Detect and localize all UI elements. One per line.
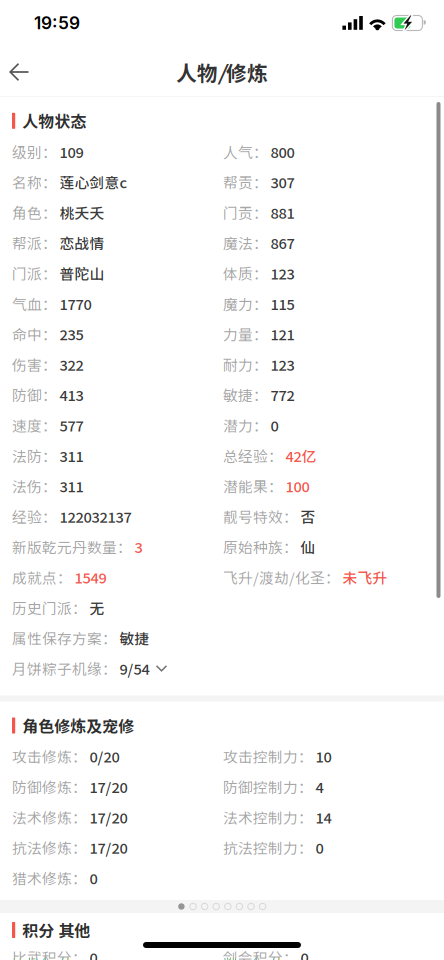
staticText: 3 [134,536,142,557]
staticText: 322 [59,354,83,375]
staticText: 积分 其他 [22,918,90,942]
staticText: 帮派： [12,232,57,253]
staticText: 577 [59,414,83,436]
staticText: 猎术修炼： [12,867,87,888]
staticText: 耐力： [223,354,268,375]
staticText: 仙 [300,536,315,557]
staticText: 311 [59,475,83,496]
staticText: 潜力： [223,414,268,436]
staticText: 人气： [223,141,268,162]
staticText: 攻击控制力： [223,746,313,767]
staticText: 311 [59,445,83,466]
staticText: 人物 [176,57,218,87]
staticText: 新版乾元丹数量： [12,536,132,557]
staticText: 剑会积分： [223,947,298,960]
staticText: 命中： [12,323,57,344]
staticText: 速度： [12,414,57,436]
button[interactable]: Back [0,48,54,96]
staticText: 体质： [223,262,268,284]
staticText: 普陀山 [59,262,104,284]
staticText: 123 [270,262,294,284]
staticText: 属性保存方案： [12,627,117,648]
staticText: 级别： [12,141,57,162]
staticText: 121 [270,323,294,344]
staticText: 42亿 [285,445,316,466]
staticText: 伤害： [12,354,57,375]
staticText: 772 [270,384,294,405]
staticText: 0 [270,414,278,436]
staticText: 413 [59,384,83,405]
staticText: 气血： [12,293,57,314]
staticText: 门贡： [223,202,268,223]
staticText: 角色： [12,202,57,223]
staticText: 敏捷： [223,384,268,405]
staticText: 1549 [74,566,106,588]
staticText: 235 [59,323,83,344]
staticText: 法防： [12,445,57,466]
staticText: 800 [270,141,294,162]
staticText: 修炼 [226,57,268,87]
staticText: 14 [315,806,331,828]
staticText: 敏捷 [119,627,149,648]
staticText: 防御控制力： [223,776,313,797]
staticText: 莲心剑意c [59,171,127,192]
staticText: 防御修炼： [12,776,87,797]
staticText: 法术修炼： [12,806,87,828]
staticText: 恋战情 [59,232,104,253]
staticText: 抗法修炼： [12,837,87,858]
staticText: 月饼粽子机缘： [12,658,117,679]
staticText: 否 [300,506,315,527]
staticText: 4 [315,776,323,797]
staticText: 人物状态 [22,109,86,132]
staticText: 桃夭夭 [59,202,104,223]
staticText: 17/20 [89,806,127,828]
staticText: 魔力： [223,293,268,314]
staticText: 无 [89,597,104,618]
staticText: 0 [89,947,97,960]
staticText: 总经验： [223,445,283,466]
staticText: 1770 [59,293,91,314]
staticText: 角色修炼及宠修 [22,714,134,737]
staticText: 经验： [12,506,57,527]
staticText: 力量： [223,323,268,344]
staticText: 307 [270,171,294,192]
staticText: 881 [270,202,294,223]
staticText: 未飞升 [342,566,387,588]
staticText: 19:59 [34,12,80,33]
staticText: 靓号特效： [223,506,298,527]
staticText: 法伤： [12,475,57,496]
staticText: 抗法控制力： [223,837,313,858]
staticText: 名称： [12,171,57,192]
staticText: 0/20 [89,746,119,767]
staticText: 比武积分： [12,947,87,960]
staticText: 9/54 [119,658,149,679]
staticText: 115 [270,293,294,314]
staticText: 867 [270,232,294,253]
staticText: / [218,57,226,87]
staticText: 17/20 [89,837,127,858]
staticText: 0 [300,947,308,960]
staticText: 122032137 [59,506,131,527]
staticText: 门派： [12,262,57,284]
staticText: 0 [89,867,97,888]
staticText: 飞升/渡劫/化圣： [223,566,340,588]
staticText: 0 [315,837,323,858]
staticText: 法术控制力： [223,806,313,828]
staticText: 潜能果： [223,475,283,496]
staticText: 109 [59,141,83,162]
staticText: 攻击修炼： [12,746,87,767]
staticText: 历史门派： [12,597,87,618]
staticText: 100 [285,475,309,496]
staticText: 成就点： [12,566,72,588]
staticText: 魔法： [223,232,268,253]
staticText: 原始种族： [223,536,298,557]
staticText: 17/20 [89,776,127,797]
staticText: 帮贡： [223,171,268,192]
staticText: 防御： [12,384,57,405]
staticText: 123 [270,354,294,375]
staticText: 10 [315,746,331,767]
